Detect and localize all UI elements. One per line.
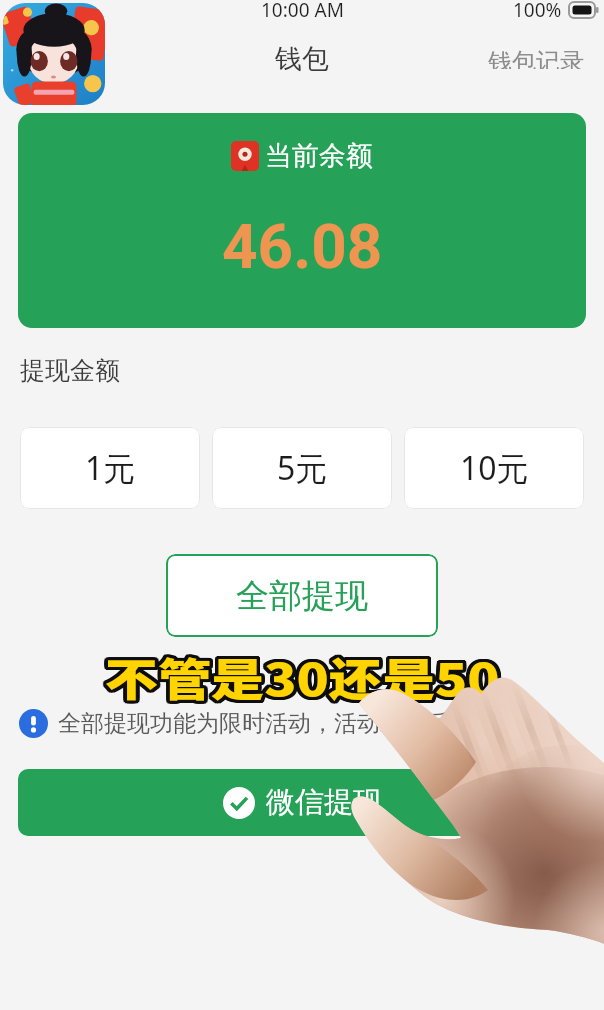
staticText: 不管是30还是50: [108, 645, 504, 710]
button[interactable]: 钱包记录: [468, 41, 604, 75]
staticText: 当前余额: [265, 139, 373, 173]
staticText: 不管是30还是50: [107, 646, 502, 711]
staticText: 不管是30还是50: [102, 647, 498, 712]
button[interactable]: 10元: [404, 427, 584, 509]
button[interactable]: 1元: [20, 427, 200, 509]
staticText: 提现金额: [20, 355, 120, 386]
staticText: 不管是30还是50: [102, 642, 498, 707]
staticText: 不管是30还是50: [106, 641, 501, 706]
staticText: 不管是30还是50: [107, 642, 502, 707]
staticText: 1元: [85, 446, 136, 490]
staticText: 不管是30还是50: [107, 647, 502, 712]
staticText: 10元: [460, 446, 529, 490]
staticText: 不管是30还是50: [108, 644, 504, 709]
button[interactable]: 微信提现: [18, 769, 586, 836]
staticText: 不管是30还是50: [105, 647, 500, 712]
staticText: 不管是30还是50: [104, 647, 499, 712]
button[interactable]: 当前余额: [18, 113, 586, 328]
staticText: 微信提现: [266, 784, 382, 821]
staticText: 不管是30还是50: [101, 643, 497, 708]
staticText: 46.08: [222, 210, 383, 283]
staticText: 不管是30还是50: [105, 641, 500, 706]
staticText: 100%: [513, 0, 562, 23]
staticText: 不管是30还是50: [105, 647, 500, 712]
staticText: 全部提现: [236, 575, 368, 617]
button[interactable]: App icon: [3, 3, 105, 105]
staticText: 5元: [277, 446, 328, 490]
button[interactable]: 5元: [212, 427, 392, 509]
staticText: 不管是30还是50: [108, 646, 504, 711]
staticText: 不管是30还是50: [101, 642, 497, 707]
staticText: 不管是30还是50: [105, 641, 500, 706]
staticText: 不管是30还是50: [108, 643, 504, 708]
button[interactable]: 全部提现: [166, 554, 438, 637]
staticText: 不管是30还是50: [105, 644, 500, 709]
staticText: 钱包记录: [488, 47, 584, 69]
staticText: 不管是30还是50: [108, 642, 504, 707]
staticText: 不管是30还是50: [102, 646, 498, 711]
staticText: 不管是30还是50: [101, 644, 497, 709]
staticText: 不管是30还是50: [101, 644, 497, 709]
staticText: 不管是30还是50: [101, 645, 497, 710]
staticText: 钱包: [275, 42, 329, 76]
staticText: 全部提现功能为限时活动，活动结束后恢复: [58, 709, 495, 738]
staticText: 不管是30还是50: [106, 647, 501, 712]
staticText: 不管是30还是50: [101, 646, 497, 711]
staticText: 不管是30还是50: [108, 644, 504, 709]
staticText: 10:00 AM: [261, 0, 344, 23]
staticText: 不管是30还是50: [102, 641, 498, 706]
staticText: 不管是30还是50: [107, 641, 502, 706]
staticText: 不管是30还是50: [104, 641, 499, 706]
